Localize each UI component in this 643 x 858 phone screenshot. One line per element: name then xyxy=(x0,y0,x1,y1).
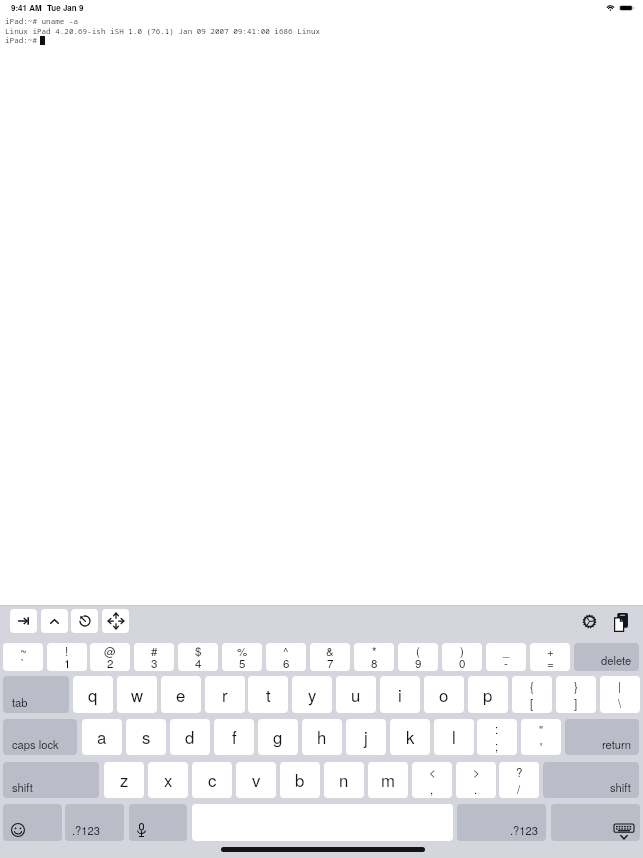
staticText: 3 xyxy=(151,655,158,671)
button[interactable]: ! xyxy=(47,643,87,671)
button[interactable]: tab xyxy=(3,676,69,713)
button[interactable]: m xyxy=(368,762,408,798)
button[interactable]: Emoji xyxy=(3,804,62,841)
button[interactable]: < xyxy=(412,762,452,798)
staticText: Linux iPad 4.20.69-ish iSH 1.0 (76.1) Ja… xyxy=(5,26,321,36)
button[interactable]: Arrow keys xyxy=(102,609,129,633)
staticText: ' xyxy=(540,738,543,755)
staticText: { xyxy=(530,678,534,695)
button[interactable]: o xyxy=(424,676,464,713)
staticText: [ xyxy=(530,695,534,712)
staticText: .?123 xyxy=(72,822,100,838)
button[interactable]: t xyxy=(248,676,288,713)
staticText: 7 xyxy=(327,655,334,671)
button[interactable]: " xyxy=(521,719,561,755)
staticText: Tue Jan 9 xyxy=(47,2,84,13)
button[interactable]: r xyxy=(205,676,245,713)
button[interactable]: y xyxy=(292,676,332,713)
staticText: x xyxy=(164,768,173,792)
button[interactable]: shift xyxy=(543,762,639,798)
button[interactable]: i xyxy=(380,676,420,713)
button[interactable]: _ xyxy=(486,643,526,671)
button[interactable]: + xyxy=(530,643,570,671)
button[interactable]: Control xyxy=(41,609,68,633)
button[interactable]: Dictate xyxy=(129,804,187,841)
staticText: _ xyxy=(503,643,510,660)
staticText: y xyxy=(308,683,317,707)
staticText: . xyxy=(474,781,478,798)
button[interactable]: | xyxy=(600,676,640,713)
button[interactable]: { xyxy=(512,676,552,713)
button[interactable]: > xyxy=(456,762,496,798)
button[interactable]: return xyxy=(565,719,639,755)
staticText: ^ xyxy=(283,643,289,660)
button[interactable]: Settings xyxy=(578,610,600,632)
button[interactable]: b xyxy=(280,762,320,798)
button[interactable]: Hide keyboard xyxy=(551,804,640,841)
button[interactable]: .?123 xyxy=(457,804,546,841)
staticText: a xyxy=(97,725,107,749)
button[interactable]: q xyxy=(73,676,113,713)
button[interactable]: caps lock xyxy=(3,719,77,755)
staticText: ; xyxy=(495,738,499,755)
button[interactable]: Command history xyxy=(71,609,98,633)
staticText: ( xyxy=(416,643,420,660)
button[interactable]: p xyxy=(468,676,508,713)
staticText: w xyxy=(131,683,144,707)
staticText: 8 xyxy=(371,655,378,671)
button[interactable]: ? xyxy=(499,762,539,798)
button[interactable]: g xyxy=(258,719,298,755)
button[interactable]: k xyxy=(390,719,430,755)
button[interactable]: shift xyxy=(3,762,99,798)
button[interactable]: e xyxy=(161,676,201,713)
button[interactable]: % xyxy=(222,643,262,671)
button[interactable]: u xyxy=(336,676,376,713)
button[interactable]: d xyxy=(170,719,210,755)
button[interactable]: @ xyxy=(90,643,130,671)
staticText: 2 xyxy=(107,655,114,671)
button[interactable]: j xyxy=(346,719,386,755)
button[interactable]: a xyxy=(82,719,122,755)
staticText: shift xyxy=(12,779,33,795)
button[interactable]: Paste xyxy=(610,611,632,633)
button[interactable]: ) xyxy=(442,643,482,671)
button[interactable]: delete xyxy=(574,643,639,671)
button[interactable]: w xyxy=(117,676,157,713)
staticText: iPad:~# uname -a xyxy=(5,16,79,26)
button[interactable]: z xyxy=(104,762,144,798)
button[interactable]: # xyxy=(134,643,174,671)
button[interactable]: } xyxy=(556,676,596,713)
staticText: d xyxy=(185,725,195,749)
button[interactable]: x xyxy=(148,762,188,798)
staticText: s xyxy=(142,725,151,749)
button[interactable]: n xyxy=(324,762,364,798)
staticText: h xyxy=(317,725,327,749)
button[interactable]: * xyxy=(354,643,394,671)
staticText: , xyxy=(430,781,434,798)
button[interactable]: l xyxy=(434,719,474,755)
button[interactable]: & xyxy=(310,643,350,671)
staticText: iPad:~# xyxy=(5,35,42,45)
button[interactable]: $ xyxy=(178,643,218,671)
button[interactable]: Tab xyxy=(10,609,37,633)
button[interactable]: : xyxy=(477,719,517,755)
staticText: ` xyxy=(21,655,25,671)
button[interactable]: .?123 xyxy=(65,804,124,841)
button[interactable]: f xyxy=(214,719,254,755)
staticText: > xyxy=(473,764,480,781)
button[interactable]: ( xyxy=(398,643,438,671)
button[interactable]: ~ xyxy=(3,643,43,671)
button[interactable]: s xyxy=(126,719,166,755)
staticText: j xyxy=(364,725,368,749)
button[interactable]: v xyxy=(236,762,276,798)
button[interactable]: c xyxy=(192,762,232,798)
staticText: 9 xyxy=(415,655,422,671)
staticText: 4 xyxy=(195,655,202,671)
staticText: shift xyxy=(610,779,631,795)
button[interactable]: ^ xyxy=(266,643,306,671)
button[interactable]: h xyxy=(302,719,342,755)
staticText: 6 xyxy=(283,655,290,671)
staticText: | xyxy=(618,678,622,695)
staticText: % xyxy=(237,643,248,660)
